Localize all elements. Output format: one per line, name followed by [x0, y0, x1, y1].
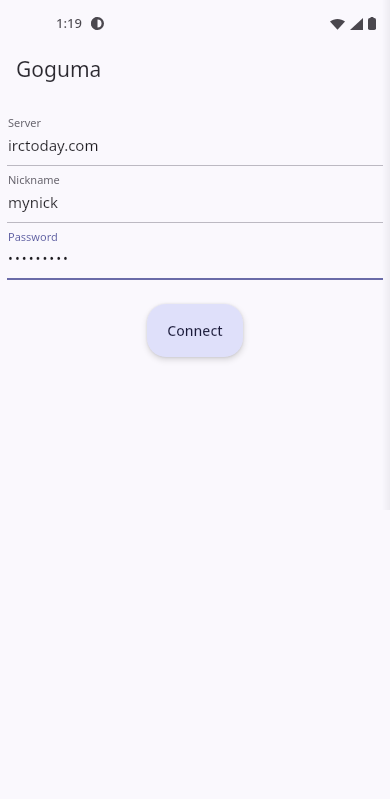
button[interactable]: Nickname [0, 166, 390, 223]
button[interactable]: Password [0, 223, 390, 280]
staticText: Connect [167, 321, 223, 340]
staticText: ••••••••• [8, 249, 70, 267]
staticText: Password [8, 229, 58, 244]
staticText: Goguma [16, 55, 102, 84]
staticText: irctoday.com [8, 135, 99, 155]
staticText: Nickname [8, 172, 60, 187]
staticText: Server [8, 115, 42, 130]
button[interactable]: Server [0, 109, 390, 166]
button[interactable]: Connect [147, 304, 243, 357]
staticText: mynick [8, 192, 59, 212]
staticText: 1:19 [56, 14, 82, 32]
